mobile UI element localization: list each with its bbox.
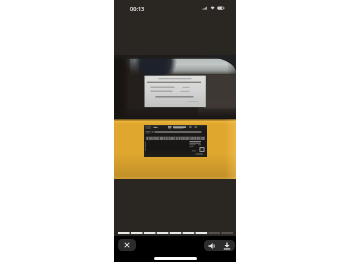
button[interactable]: Download (219, 240, 235, 251)
button[interactable]: Close (118, 239, 136, 251)
button[interactable]: Volume (204, 240, 219, 251)
staticText: 00:13 (130, 5, 145, 13)
